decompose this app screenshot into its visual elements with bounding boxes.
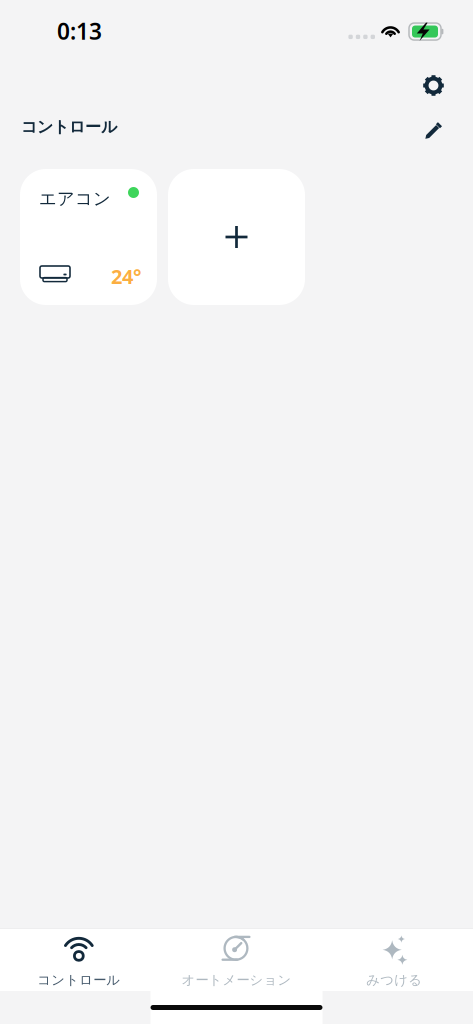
staticText: コントロール [21,117,117,137]
button[interactable]: みつける [315,926,473,994]
staticText: エアコン [39,188,111,209]
staticText: オートメーション [181,972,291,988]
button[interactable]: コントロール [0,926,158,994]
button[interactable]: 編集 [416,113,451,148]
staticText: 24° [111,263,141,290]
staticText: コントロール [37,972,120,988]
button[interactable]: オートメーション [158,926,315,994]
staticText: みつける [366,972,422,988]
button[interactable]: 設定 [414,66,453,105]
button[interactable]: エアコン [20,169,157,305]
button[interactable]: デバイスを追加 [168,169,305,305]
staticText: 0:13 [57,16,102,46]
